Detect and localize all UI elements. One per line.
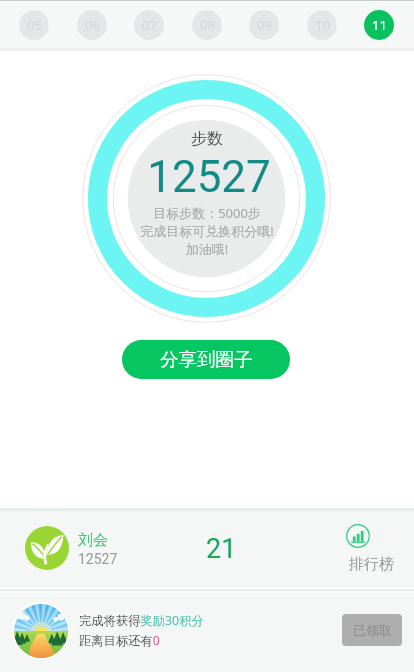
staticText: 05 [27, 16, 42, 34]
button[interactable]: 分享到圈子 [122, 340, 290, 379]
button[interactable]: 05 [19, 10, 49, 40]
staticText: 距离目标还有0 [79, 632, 160, 649]
staticText: 完成将获得奖励30积分 [79, 612, 204, 629]
staticText: 分享到圈子 [160, 348, 253, 371]
button[interactable]: 已领取 [342, 614, 402, 646]
staticText: 06 [85, 16, 100, 34]
staticText: 11 [372, 16, 387, 34]
staticText: 21 [206, 533, 237, 565]
button[interactable]: 08 [192, 10, 222, 40]
staticText: 排行榜 [349, 555, 394, 574]
staticText: 08 [200, 16, 215, 34]
staticText: 07 [142, 16, 157, 34]
staticText: 已领取 [353, 622, 392, 638]
button[interactable]: 排行榜 [340, 517, 400, 579]
staticText: 刘会 [78, 531, 108, 550]
staticText: 完成目标可兑换积分哦! [0, 222, 414, 240]
staticText: 12527 [2, 151, 414, 203]
staticText: 加油哦! [0, 240, 414, 258]
staticText: 目标步数：5000步 [0, 204, 414, 222]
staticText: 10 [315, 16, 330, 34]
button[interactable]: 刘会 [0, 511, 414, 587]
staticText: 09 [257, 16, 272, 34]
button[interactable]: 09 [249, 10, 279, 40]
button[interactable]: 10 [307, 10, 337, 40]
button[interactable]: 06 [77, 10, 107, 40]
button[interactable]: 11 [364, 10, 394, 40]
button[interactable]: 07 [134, 10, 164, 40]
staticText: 步数 [0, 129, 414, 149]
staticText: 12527 [78, 551, 118, 567]
